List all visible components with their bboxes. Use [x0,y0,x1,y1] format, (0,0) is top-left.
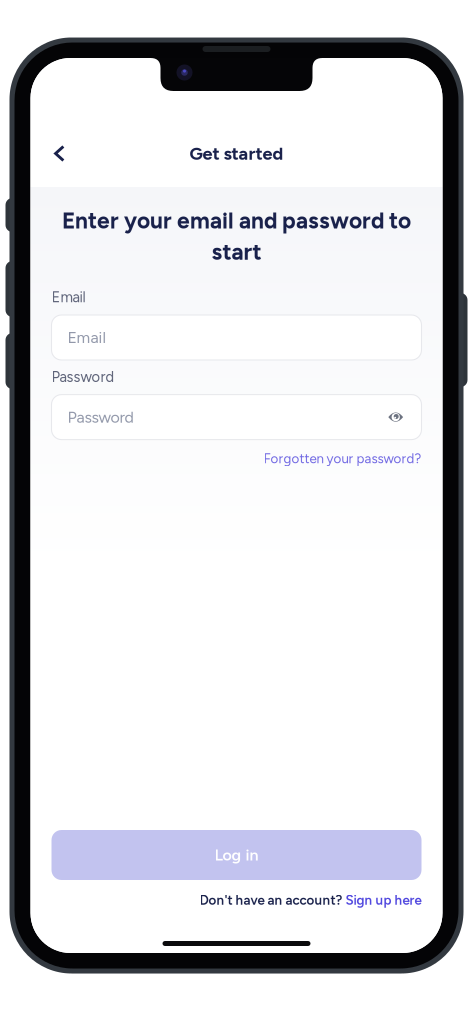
staticText: Password [67,407,133,427]
staticText: Get started [189,143,283,164]
staticText: Don't have an account? [199,892,342,908]
staticText: Enter your email and password to [62,207,411,234]
button[interactable]: Back [41,132,77,174]
staticText: start [211,238,261,265]
button[interactable]: Password [51,395,421,440]
button[interactable]: Email [51,315,421,360]
staticText: Log in [214,845,258,865]
staticText: Password [51,368,114,386]
staticText: Email [67,328,106,347]
button[interactable]: Forgotten your password? [263,451,421,467]
staticText: Sign up here [345,892,421,908]
button[interactable]: Sign up here [345,892,421,908]
staticText: Email [51,288,85,306]
button[interactable]: Log in [51,830,421,880]
staticText: Forgotten your password? [263,451,421,467]
